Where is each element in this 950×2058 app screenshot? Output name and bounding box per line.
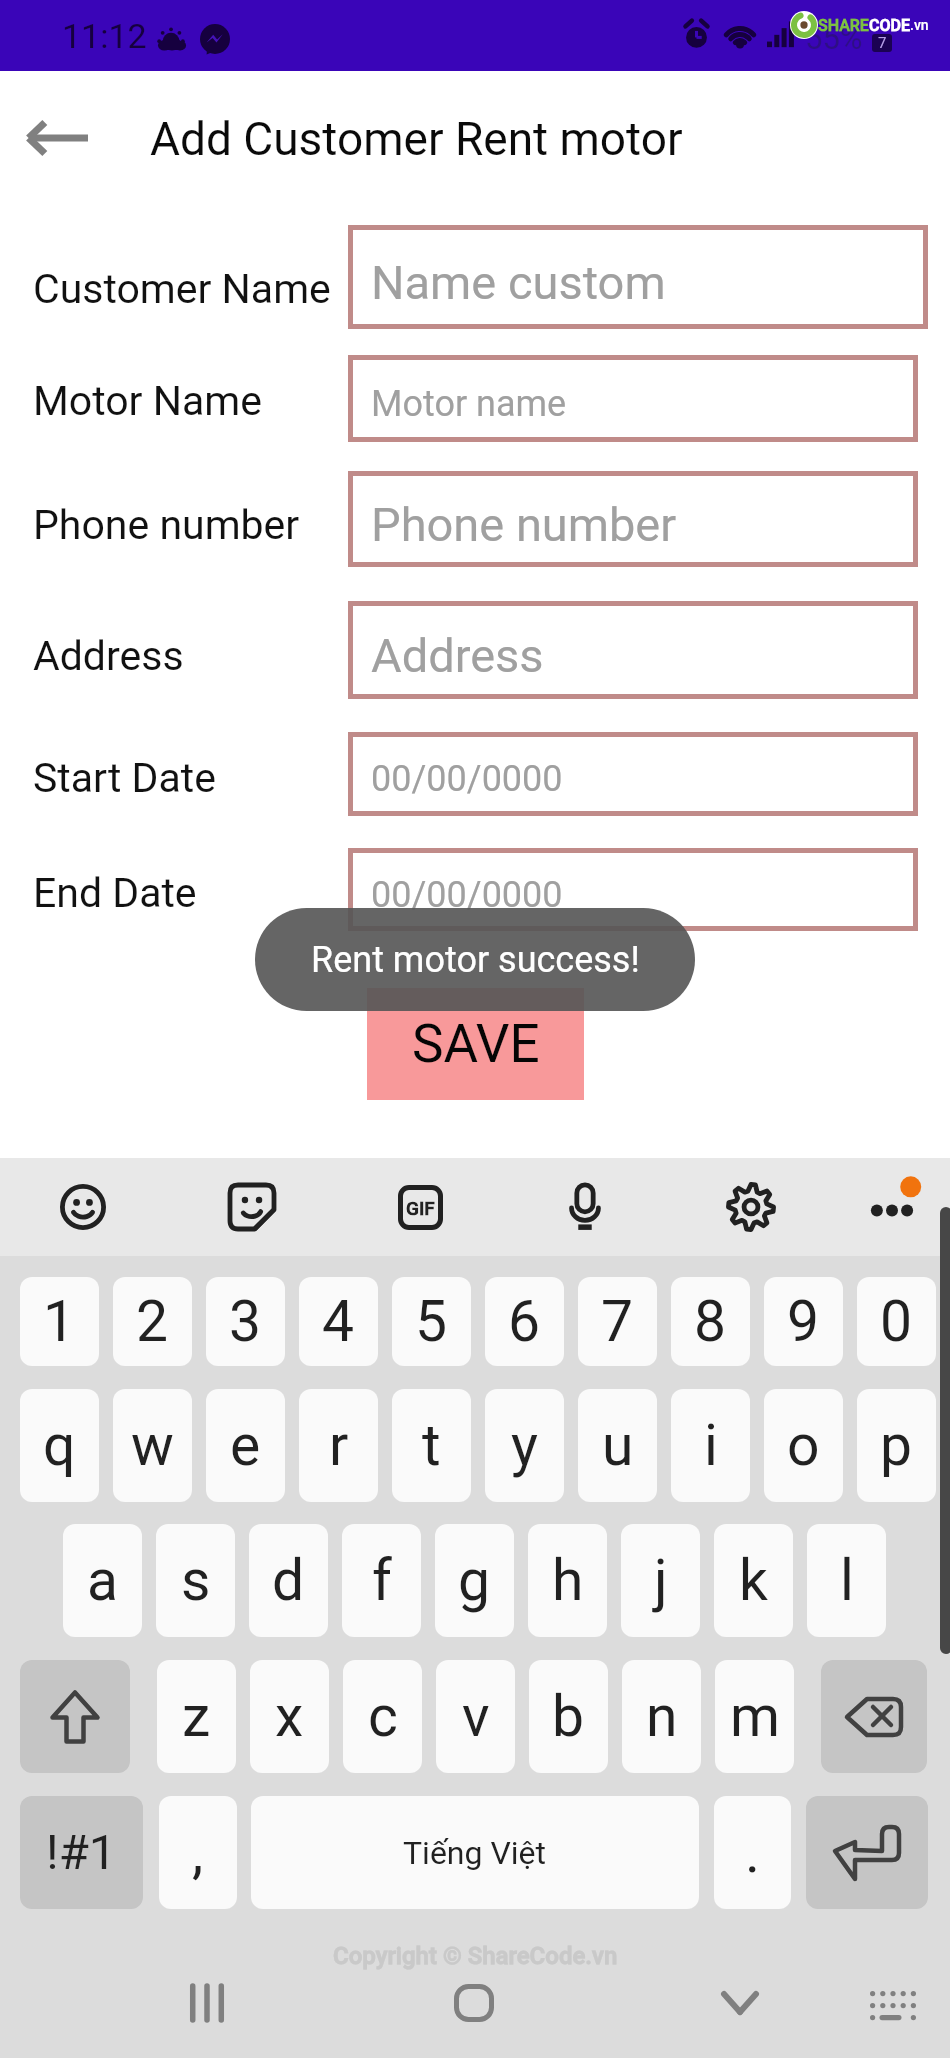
button[interactable]: b xyxy=(529,1660,608,1773)
staticText: y xyxy=(511,1412,538,1479)
staticText: h xyxy=(552,1547,584,1614)
staticText: g xyxy=(458,1547,491,1614)
staticText: 7 xyxy=(878,34,887,52)
button[interactable]: x xyxy=(250,1660,329,1773)
button[interactable]: n xyxy=(622,1660,701,1773)
button[interactable]: Phone number xyxy=(348,471,918,567)
staticText: 1 xyxy=(43,1288,76,1355)
button[interactable]: 00/00/0000 xyxy=(348,732,918,816)
button[interactable]: e xyxy=(206,1389,285,1502)
staticText: p xyxy=(880,1412,913,1479)
button[interactable]: g xyxy=(435,1524,514,1637)
button[interactable]: p xyxy=(857,1389,936,1502)
button[interactable]: 6 xyxy=(485,1277,564,1366)
button[interactable]: z xyxy=(157,1660,236,1773)
staticText: c xyxy=(368,1683,398,1750)
staticText: w xyxy=(131,1412,174,1479)
button[interactable]: Back xyxy=(12,98,102,178)
button[interactable]: h xyxy=(528,1524,607,1637)
button[interactable]: w xyxy=(113,1389,192,1502)
staticText: n xyxy=(646,1683,678,1750)
button[interactable]: Address xyxy=(348,601,918,699)
button[interactable]: . xyxy=(714,1796,791,1909)
button[interactable]: Emoji xyxy=(47,1171,119,1243)
staticText: e xyxy=(230,1412,261,1479)
button[interactable]: 4 xyxy=(299,1277,378,1366)
button[interactable]: s xyxy=(156,1524,235,1637)
staticText: Motor Name xyxy=(33,377,262,425)
staticText: Customer Name xyxy=(33,265,331,313)
button[interactable]: i xyxy=(671,1389,750,1502)
staticText: Phone number xyxy=(371,497,677,552)
staticText: CODE xyxy=(869,16,910,35)
button[interactable]: f xyxy=(342,1524,421,1637)
button[interactable]: u xyxy=(578,1389,657,1502)
button[interactable]: a xyxy=(63,1524,142,1637)
button[interactable]: 5 xyxy=(392,1277,471,1366)
staticText: x xyxy=(275,1683,304,1750)
staticText: 9 xyxy=(787,1288,820,1355)
button[interactable]: 1 xyxy=(20,1277,99,1366)
button[interactable]: Shift xyxy=(20,1660,130,1773)
staticText: Copyright © ShareCode.vn xyxy=(333,1942,618,1970)
button[interactable]: o xyxy=(764,1389,843,1502)
button[interactable]: r xyxy=(299,1389,378,1502)
button[interactable]: v xyxy=(436,1660,515,1773)
staticText: 4 xyxy=(322,1288,355,1355)
button[interactable]: Recent apps xyxy=(167,1963,247,2043)
button[interactable]: Home xyxy=(434,1963,514,2043)
button[interactable]: GIF xyxy=(384,1171,456,1243)
staticText: 8 xyxy=(694,1288,727,1355)
staticText: k xyxy=(739,1547,768,1614)
button[interactable]: Tiếng Việt xyxy=(251,1796,699,1909)
staticText: !#1 xyxy=(46,1824,117,1881)
staticText: 5 xyxy=(415,1288,448,1355)
button[interactable]: t xyxy=(392,1389,471,1502)
button[interactable]: d xyxy=(249,1524,328,1637)
staticText: Name custom xyxy=(371,255,666,310)
staticText: .vn xyxy=(910,17,929,33)
button[interactable]: 0 xyxy=(857,1277,936,1366)
button[interactable]: j xyxy=(621,1524,700,1637)
button[interactable]: y xyxy=(485,1389,564,1502)
button[interactable]: 8 xyxy=(671,1277,750,1366)
button[interactable]: More options xyxy=(856,1171,928,1243)
staticText: l xyxy=(840,1547,854,1614)
staticText: 2 xyxy=(136,1288,169,1355)
staticText: 11:12 xyxy=(62,16,147,56)
button[interactable]: c xyxy=(343,1660,422,1773)
button[interactable]: q xyxy=(20,1389,99,1502)
staticText: d xyxy=(272,1547,305,1614)
staticText: i xyxy=(704,1412,718,1479)
staticText: Motor name xyxy=(371,383,567,425)
staticText: Address xyxy=(371,628,544,683)
button[interactable]: Voice input xyxy=(549,1171,621,1243)
button[interactable]: m xyxy=(715,1660,794,1773)
button[interactable]: 2 xyxy=(113,1277,192,1366)
button[interactable]: Stickers xyxy=(216,1171,288,1243)
staticText: f xyxy=(372,1547,392,1614)
button[interactable]: k xyxy=(714,1524,793,1637)
button[interactable]: Backspace xyxy=(821,1660,927,1773)
button[interactable]: !#1 xyxy=(20,1796,143,1909)
button[interactable]: 9 xyxy=(764,1277,843,1366)
button[interactable]: Settings xyxy=(715,1171,787,1243)
staticText: j xyxy=(654,1547,668,1614)
staticText: u xyxy=(602,1412,634,1479)
staticText: a xyxy=(87,1547,119,1614)
staticText: 00/00/0000 xyxy=(371,758,563,800)
button[interactable]: Hide keyboard xyxy=(700,1963,780,2043)
staticText: 7 xyxy=(601,1288,634,1355)
button[interactable]: SAVE xyxy=(367,988,584,1100)
button[interactable]: Enter xyxy=(806,1796,928,1909)
button[interactable]: l xyxy=(807,1524,886,1637)
button[interactable]: 3 xyxy=(206,1277,285,1366)
button[interactable]: 00/00/0000 xyxy=(348,848,918,931)
button[interactable]: Name custom xyxy=(348,225,928,329)
button[interactable]: , xyxy=(159,1796,237,1909)
button[interactable]: 7 xyxy=(578,1277,657,1366)
button[interactable]: Change keyboard xyxy=(850,1963,930,2043)
button[interactable]: Motor name xyxy=(348,355,918,442)
staticText: 55% xyxy=(805,20,863,56)
staticText: 6 xyxy=(508,1288,541,1355)
